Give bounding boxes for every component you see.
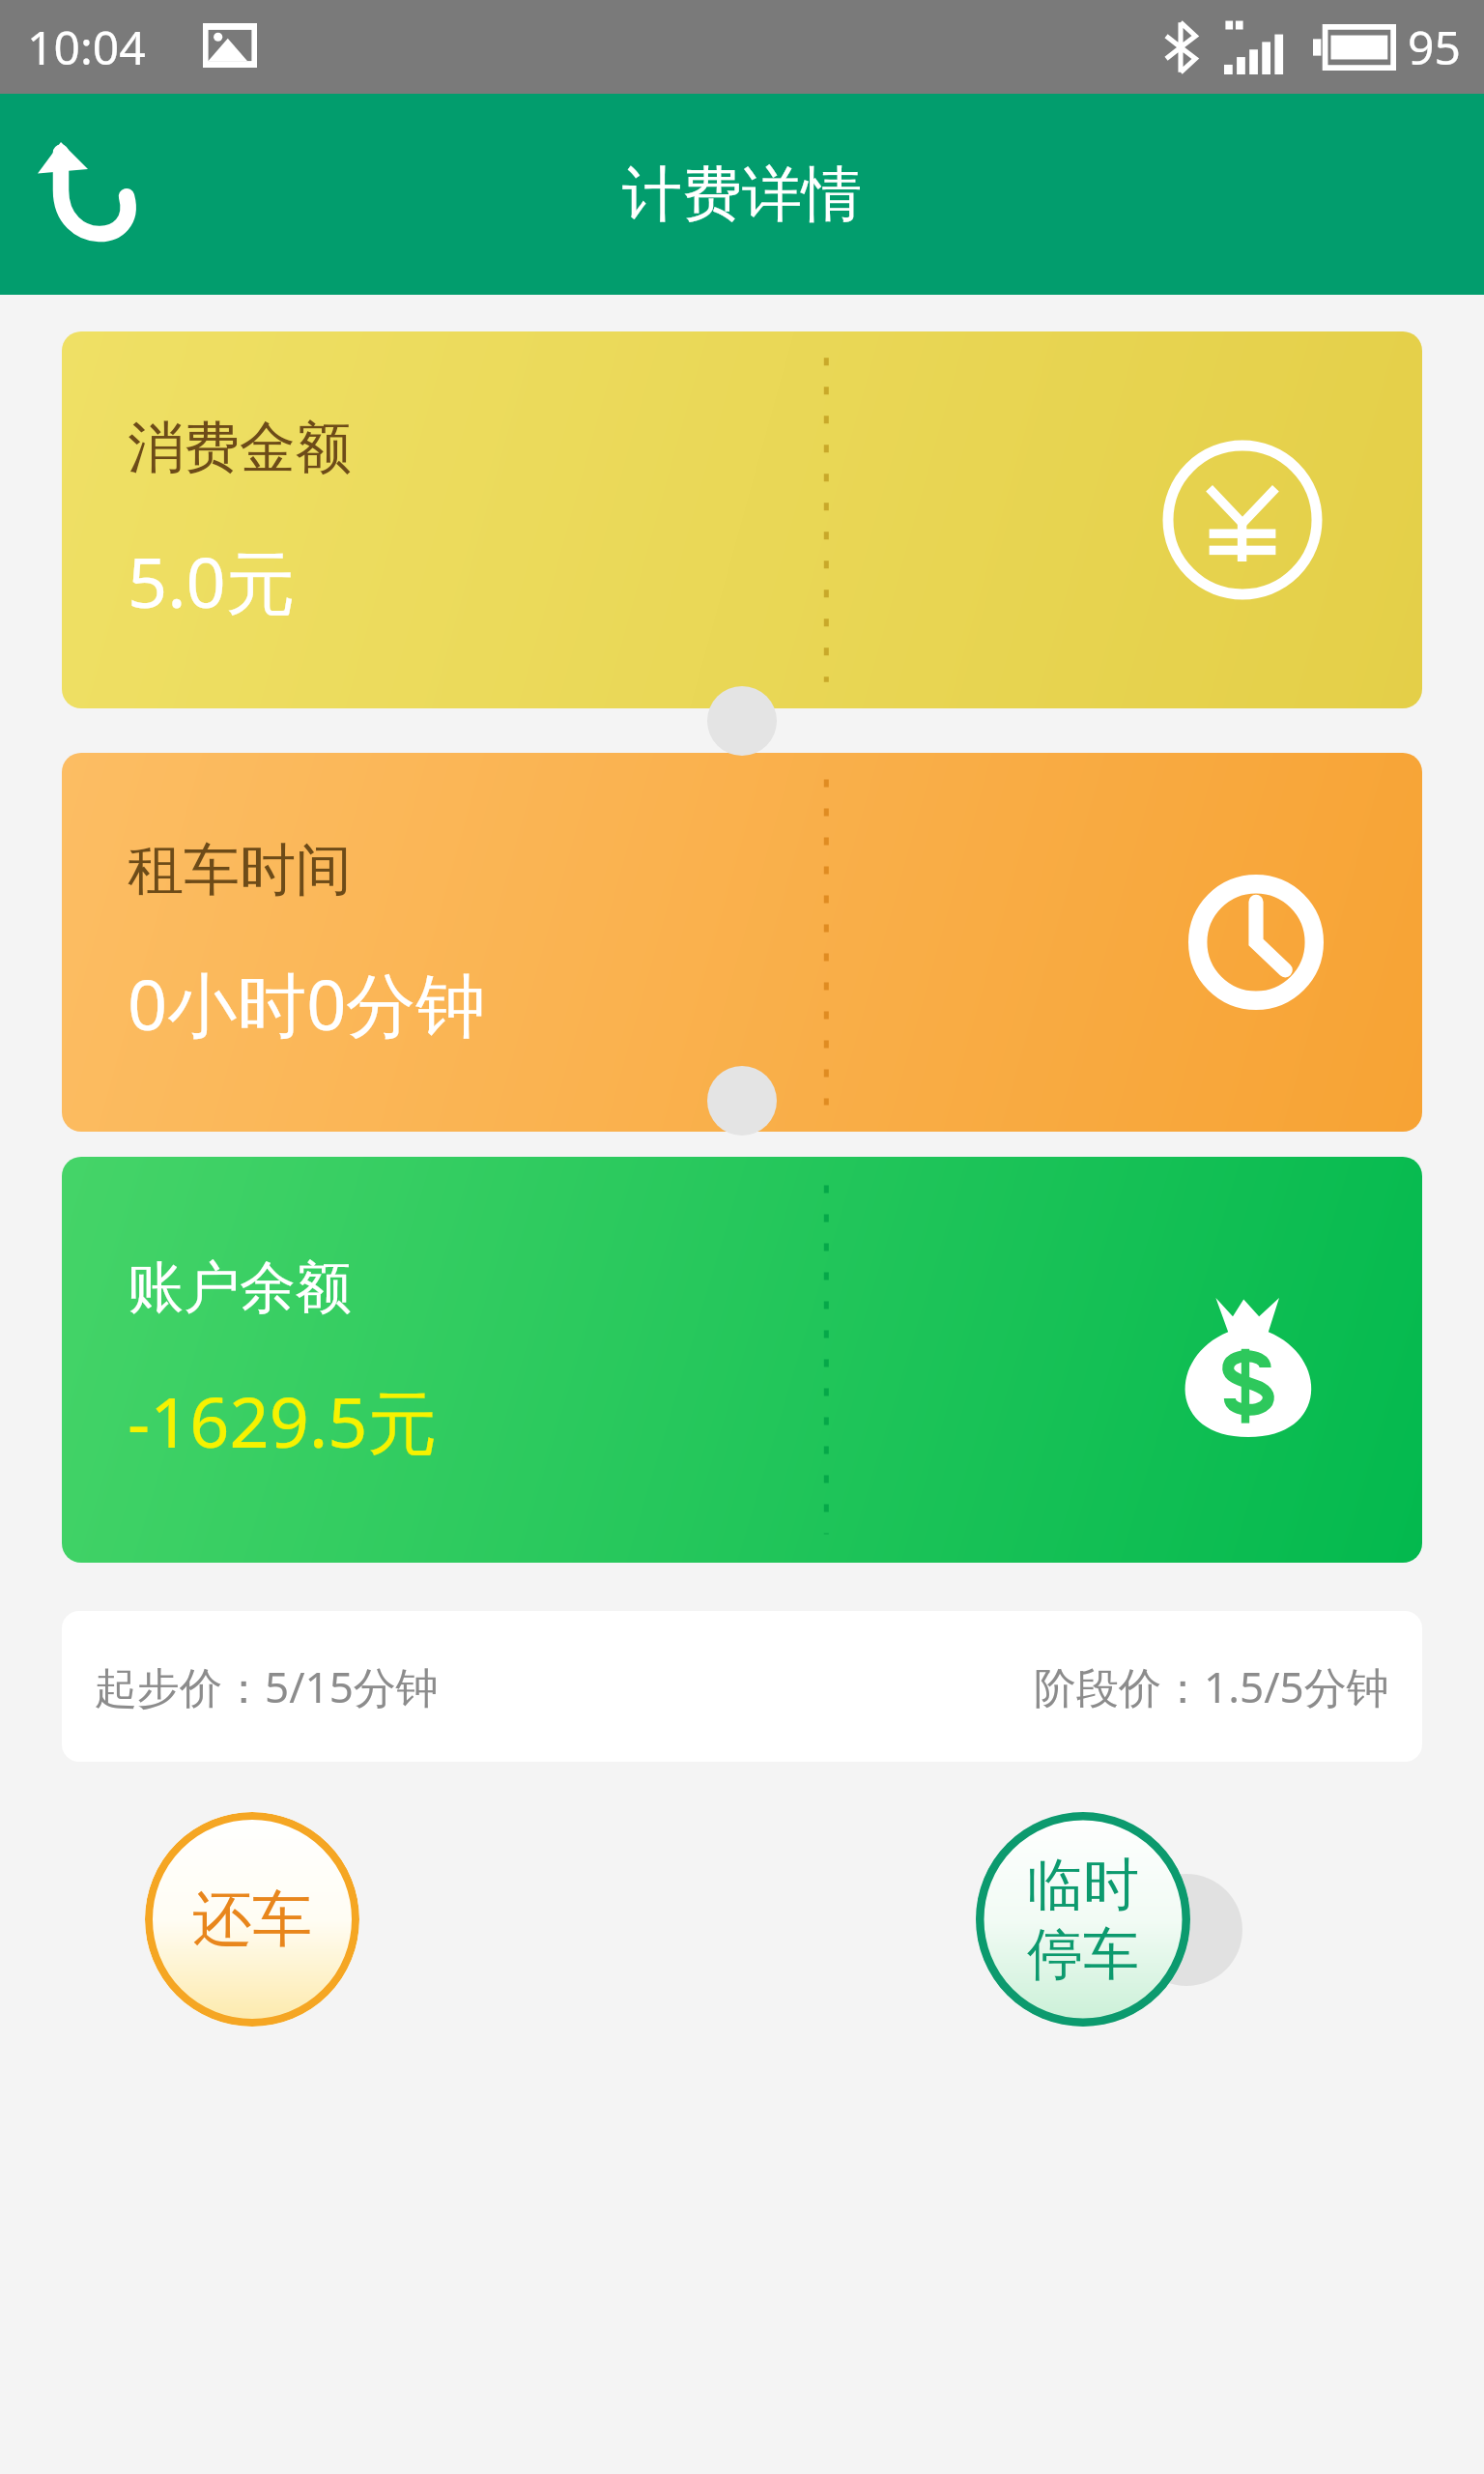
staticText: -1629.5元 — [128, 1373, 438, 1468]
staticText: 消费金额 — [128, 413, 352, 483]
staticText: 计费详情 — [622, 157, 862, 232]
button[interactable]: 临时 停车 — [976, 1812, 1190, 2027]
staticText: 账户余额 — [128, 1252, 352, 1323]
staticText: 还车 — [192, 1882, 312, 1957]
button[interactable]: 账户余额 — [62, 1157, 1422, 1563]
staticText: 阶段价：1.5/5分钟 — [1034, 1657, 1389, 1715]
button[interactable]: 起步价：5/15分钟 — [62, 1611, 1422, 1762]
staticText: 临时 停车 — [1027, 1850, 1139, 1990]
staticText: 租车时间 — [128, 835, 352, 906]
staticText: 5.0元 — [128, 533, 296, 628]
button[interactable]: 租车时间 — [62, 753, 1422, 1132]
button[interactable]: 消费金额 — [62, 331, 1422, 708]
staticText: 0小时0分钟 — [128, 956, 486, 1050]
staticText: 起步价：5/15分钟 — [95, 1657, 439, 1715]
staticText: 95 — [1408, 15, 1461, 78]
button[interactable]: 还车 — [145, 1812, 359, 2027]
button[interactable]: Back — [0, 94, 184, 295]
staticText: 10:04 — [27, 15, 146, 78]
